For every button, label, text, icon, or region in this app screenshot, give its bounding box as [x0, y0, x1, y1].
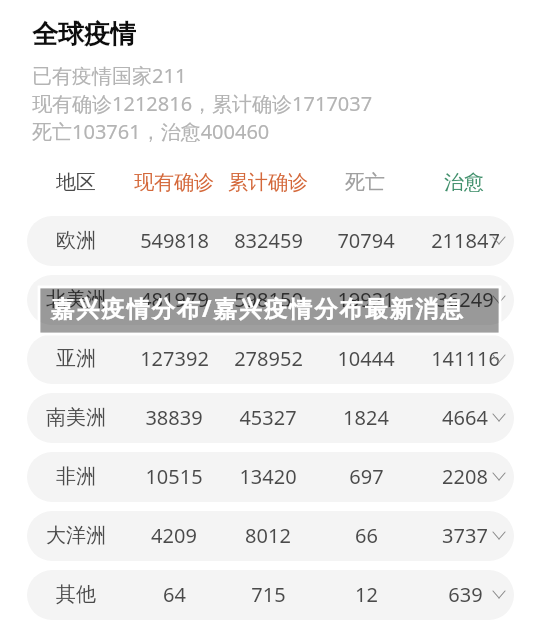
staticText: 36249: [436, 286, 494, 313]
other: 展开: [493, 237, 505, 244]
staticText: 13420: [239, 463, 297, 490]
button[interactable]: 地区: [26, 169, 126, 195]
staticText: 38839: [145, 404, 203, 431]
button[interactable]: 治愈: [414, 169, 514, 195]
staticText: 832459: [234, 227, 303, 254]
staticText: 19921: [337, 286, 395, 313]
staticText: 欧洲: [56, 228, 96, 253]
staticText: 10515: [145, 463, 203, 490]
button[interactable]: 北美洲: [27, 275, 514, 325]
staticText: 598150: [234, 286, 303, 313]
staticText: 2208: [442, 463, 488, 490]
button[interactable]: 现有确诊: [124, 169, 224, 195]
staticText: 1824: [343, 404, 389, 431]
staticText: 549818: [140, 227, 209, 254]
staticText: 南美洲: [46, 405, 106, 430]
button[interactable]: 南美洲: [27, 393, 514, 443]
staticText: 64: [163, 581, 186, 608]
staticText: 66: [355, 522, 378, 549]
staticText: 全球疫情: [32, 18, 136, 51]
staticText: 278952: [234, 345, 303, 372]
button[interactable]: 非洲: [27, 452, 514, 502]
staticText: 45327: [239, 404, 297, 431]
staticText: 其他: [56, 582, 96, 607]
staticText: 死亡: [345, 170, 385, 195]
other: 展开: [493, 532, 505, 539]
staticText: 127392: [140, 345, 209, 372]
staticText: 70794: [337, 227, 395, 254]
staticText: 北美洲: [46, 287, 106, 312]
staticText: 10444: [337, 345, 395, 372]
other: 展开: [493, 296, 505, 303]
staticText: 697: [349, 463, 384, 490]
staticText: 现有确诊: [134, 170, 214, 195]
staticText: 大洋洲: [46, 523, 106, 548]
staticText: 12: [355, 581, 378, 608]
staticText: 211847: [431, 227, 500, 254]
staticText: 非洲: [56, 464, 96, 489]
staticText: 715: [251, 581, 286, 608]
button[interactable]: 欧洲: [27, 216, 514, 266]
staticText: 地区: [56, 170, 96, 195]
other: 展开: [493, 414, 505, 421]
staticText: 亚洲: [56, 346, 96, 371]
button[interactable]: 亚洲: [27, 334, 514, 384]
button[interactable]: 其他: [27, 570, 514, 620]
other: 展开: [493, 591, 505, 598]
staticText: 累计确诊: [228, 170, 308, 195]
staticText: 141116: [431, 345, 500, 372]
button[interactable]: 累计确诊: [218, 169, 318, 195]
staticText: 481979: [140, 286, 209, 313]
staticText: 4209: [151, 522, 197, 549]
staticText: 治愈: [444, 170, 484, 195]
staticText: 嘉兴疫情分布/嘉兴疫情分布最新消息: [51, 292, 466, 323]
other: 展开: [493, 355, 505, 362]
staticText: 3737: [442, 522, 488, 549]
button[interactable]: 死亡: [315, 169, 415, 195]
button[interactable]: 大洋洲: [27, 511, 514, 561]
staticText: 639: [448, 581, 483, 608]
staticText: 已有疫情国家211 现有确诊1212816，累计确诊1717037 死亡1037…: [32, 62, 373, 145]
staticText: 8012: [245, 522, 291, 549]
staticText: 4664: [442, 404, 488, 431]
other: 展开: [493, 473, 505, 480]
